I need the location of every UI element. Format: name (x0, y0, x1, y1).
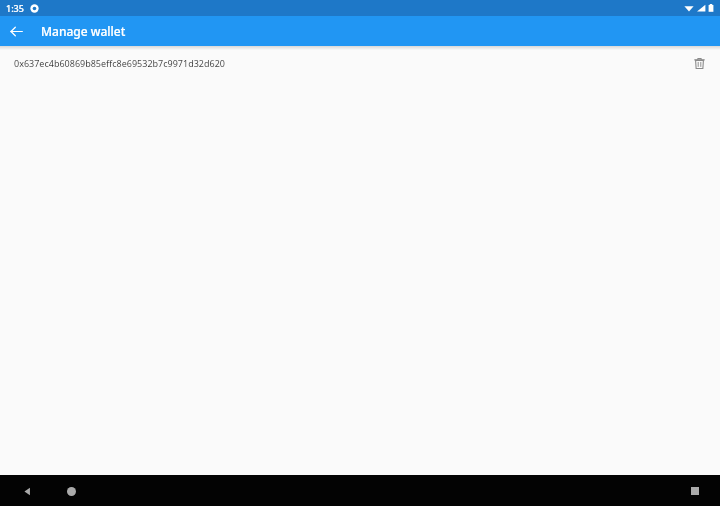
staticText: 0x637ec4b60869b85effc8e69532b7c9971d32d6… (14, 57, 688, 69)
button[interactable]: Back (16, 480, 38, 502)
button[interactable]: Delete wallet (688, 52, 710, 74)
button[interactable]: Home (60, 480, 82, 502)
button[interactable]: 0x637ec4b60869b85effc8e69532b7c9971d32d6… (0, 50, 720, 76)
button[interactable]: Recent apps (684, 480, 706, 502)
staticText: 1:35 (6, 2, 24, 14)
button[interactable]: Back (5, 20, 27, 42)
staticText: Manage wallet (41, 23, 126, 39)
